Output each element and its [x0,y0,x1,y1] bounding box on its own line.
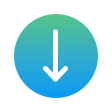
button[interactable]: Download [0,0,112,112]
